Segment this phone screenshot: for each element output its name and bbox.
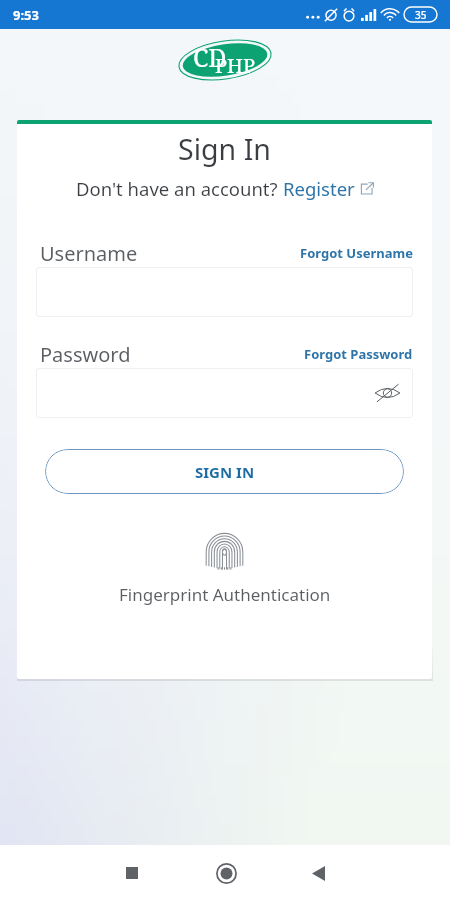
staticText: Username: [40, 240, 138, 266]
button[interactable]: Register: [283, 176, 374, 201]
button[interactable]: Fingerprint Authentication: [36, 533, 413, 606]
staticText: PHP: [215, 52, 256, 79]
button[interactable]: Home: [202, 849, 250, 897]
staticText: 9:53: [13, 6, 39, 24]
staticText: Password: [40, 341, 131, 367]
button[interactable]: Recents: [108, 849, 156, 897]
button[interactable]: Forgot Username: [300, 244, 413, 266]
staticText: CD: [193, 40, 227, 74]
button[interactable]: SIGN IN: [45, 449, 404, 494]
staticText: Sign In: [17, 130, 432, 169]
staticText: Don't have an account?: [76, 176, 283, 201]
button[interactable]: Forgot Password: [304, 345, 413, 367]
staticText: 35: [415, 8, 427, 22]
staticText: SIGN IN: [195, 462, 255, 482]
staticText: Register: [283, 176, 355, 201]
button[interactable]: Back: [294, 849, 342, 897]
button[interactable]: Show password: [371, 377, 403, 409]
staticText: Fingerprint Authentication: [119, 583, 331, 606]
